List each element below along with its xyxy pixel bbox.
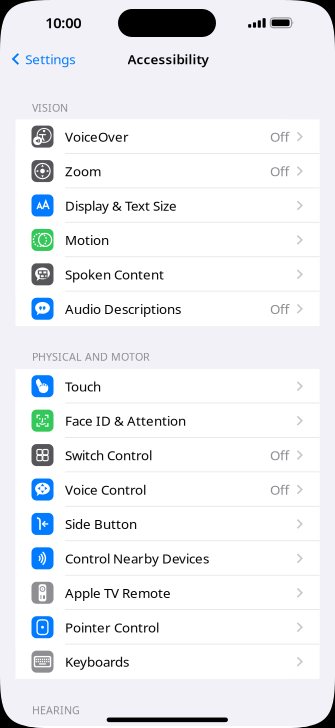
staticText: Apple TV Remote — [65, 584, 171, 602]
button[interactable]: Touch — [15, 369, 319, 403]
staticText: VISION — [32, 100, 68, 115]
staticText: Side Button — [65, 515, 137, 533]
staticText: Display & Text Size — [65, 197, 177, 214]
staticText: VoiceOver — [65, 128, 129, 145]
staticText: Off — [270, 481, 289, 498]
button[interactable]: Audio Descriptions — [15, 292, 319, 326]
button[interactable]: Keyboards — [15, 644, 319, 679]
staticText: PHYSICAL AND MOTOR — [32, 349, 150, 364]
staticText: Spoken Content — [65, 265, 164, 283]
button[interactable]: VoiceOver — [15, 119, 319, 154]
staticText: HEARING — [32, 703, 80, 717]
button[interactable]: Side Button — [15, 507, 319, 541]
staticText: Keyboards — [65, 653, 129, 670]
button[interactable]: Control Nearby Devices — [15, 541, 319, 575]
button[interactable]: Spoken Content — [15, 257, 319, 291]
staticText: Pointer Control — [65, 618, 159, 636]
button[interactable]: Display & Text Size — [15, 188, 319, 223]
button[interactable]: Apple TV Remote — [15, 576, 319, 610]
staticText: 10:00 — [45, 13, 81, 32]
staticText: Voice Control — [65, 481, 146, 498]
staticText: Face ID & Attention — [65, 412, 186, 429]
staticText: Touch — [65, 377, 101, 395]
button[interactable]: Settings — [1, 44, 83, 74]
button[interactable]: Zoom — [15, 154, 319, 188]
button[interactable]: Switch Control — [15, 438, 319, 472]
staticText: Switch Control — [65, 446, 152, 464]
staticText: Control Nearby Devices — [65, 549, 209, 567]
button[interactable]: Voice Control — [15, 472, 319, 507]
button[interactable]: Pointer Control — [15, 610, 319, 644]
button[interactable]: Face ID & Attention — [15, 403, 319, 438]
staticText: Audio Descriptions — [65, 300, 181, 318]
staticText: Motion — [65, 231, 109, 249]
staticText: Off — [270, 128, 289, 145]
staticText: Settings — [25, 50, 75, 68]
staticText: Zoom — [65, 162, 101, 180]
staticText: Off — [270, 162, 289, 180]
staticText: Accessibility — [127, 50, 208, 68]
staticText: Off — [270, 446, 289, 464]
staticText: Off — [270, 300, 289, 318]
button[interactable]: Motion — [15, 223, 319, 257]
